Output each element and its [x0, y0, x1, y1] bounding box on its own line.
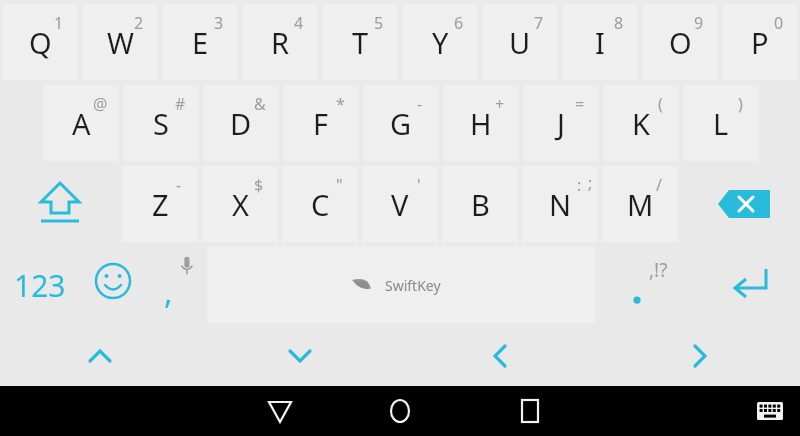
button[interactable]: Y — [402, 4, 478, 80]
staticText: O — [669, 23, 692, 62]
staticText: 8 — [614, 12, 624, 34]
button[interactable]: E — [162, 4, 238, 80]
staticText: I — [595, 23, 605, 62]
staticText: - — [417, 93, 423, 115]
button[interactable]: Q — [2, 4, 78, 80]
button[interactable]: R — [242, 4, 318, 80]
staticText: J — [557, 104, 565, 143]
button[interactable]: B — [442, 166, 518, 242]
staticText: A — [72, 104, 91, 143]
button[interactable]: I — [562, 4, 638, 80]
staticText: - — [176, 174, 182, 196]
button[interactable]: V — [362, 166, 438, 242]
button[interactable]: Space — [207, 247, 595, 323]
button[interactable]: Shift — [2, 166, 118, 242]
staticText: 1 — [54, 12, 64, 34]
button[interactable]: N — [522, 166, 598, 242]
staticText: 6 — [454, 12, 464, 34]
staticText: 9 — [694, 12, 704, 34]
button[interactable]: Backspace — [690, 166, 798, 242]
staticText: E — [192, 23, 209, 62]
staticText: Y — [432, 23, 449, 62]
button[interactable]: W — [82, 4, 158, 80]
staticText: 5 — [374, 12, 384, 34]
staticText: R — [271, 23, 290, 62]
staticText: SwiftKey — [385, 276, 441, 295]
button[interactable]: Punctuation — [595, 247, 700, 323]
staticText: 0 — [774, 12, 784, 34]
button[interactable]: Switch keyboard — [740, 386, 800, 436]
staticText: + — [495, 93, 505, 115]
button[interactable]: Comma and voice input — [146, 247, 208, 323]
staticText: " — [336, 174, 343, 196]
staticText: W — [107, 23, 134, 62]
staticText: F — [313, 104, 329, 143]
staticText: K — [632, 104, 650, 143]
staticText: / — [656, 174, 662, 196]
staticText: B — [471, 185, 490, 224]
button[interactable]: Recent apps — [490, 386, 570, 436]
staticText: U — [509, 23, 531, 62]
staticText: G — [390, 104, 412, 143]
button[interactable]: Up — [60, 330, 140, 382]
button[interactable]: K — [603, 85, 679, 161]
staticText: N — [549, 185, 572, 224]
button[interactable]: 123 — [0, 247, 80, 323]
staticText: $ — [254, 174, 264, 196]
staticText: M — [627, 185, 654, 224]
staticText: 7 — [534, 12, 544, 34]
staticText: = — [575, 93, 585, 115]
button[interactable]: F — [283, 85, 359, 161]
button[interactable]: Back — [240, 386, 320, 436]
button[interactable]: D — [203, 85, 279, 161]
staticText: ,!? — [649, 257, 668, 283]
staticText: Z — [152, 185, 169, 224]
staticText: # — [175, 93, 186, 115]
staticText: D — [230, 104, 252, 143]
button[interactable]: Left — [460, 330, 540, 382]
staticText: S — [153, 104, 169, 143]
button[interactable]: Right — [660, 330, 740, 382]
staticText: T — [352, 23, 369, 62]
staticText: P — [751, 23, 769, 62]
staticText: 3 — [214, 12, 224, 34]
staticText: * — [336, 93, 345, 115]
staticText: & — [254, 93, 266, 115]
button[interactable]: H — [443, 85, 519, 161]
button[interactable]: T — [322, 4, 398, 80]
button[interactable]: P — [722, 4, 798, 80]
button[interactable]: Enter — [700, 247, 798, 323]
staticText: 4 — [294, 12, 304, 34]
button[interactable]: J — [523, 85, 599, 161]
button[interactable]: S — [123, 85, 199, 161]
button[interactable]: O — [642, 4, 718, 80]
button[interactable]: C — [282, 166, 358, 242]
staticText: : — [577, 174, 582, 196]
staticText: Q — [29, 23, 52, 62]
button[interactable]: L — [683, 85, 759, 161]
staticText: ' — [417, 174, 421, 196]
staticText: 123 — [14, 265, 66, 306]
staticText: L — [713, 104, 729, 143]
button[interactable]: A — [43, 85, 119, 161]
button[interactable]: M — [602, 166, 678, 242]
staticText: @ — [93, 93, 108, 115]
button[interactable]: G — [363, 85, 439, 161]
button[interactable]: Emoji — [80, 247, 146, 323]
staticText: X — [232, 185, 249, 224]
staticText: , — [164, 270, 173, 314]
button[interactable]: X — [202, 166, 278, 242]
staticText: H — [470, 104, 492, 143]
button[interactable]: Down — [260, 330, 340, 382]
staticText: V — [391, 185, 409, 224]
staticText: ) — [738, 93, 743, 115]
staticText: ; — [588, 172, 593, 194]
button[interactable]: Home — [360, 386, 440, 436]
button[interactable]: Z — [122, 166, 198, 242]
button[interactable]: U — [482, 4, 558, 80]
staticText: 2 — [134, 12, 144, 34]
staticText: ( — [658, 93, 663, 115]
staticText: C — [311, 185, 330, 224]
